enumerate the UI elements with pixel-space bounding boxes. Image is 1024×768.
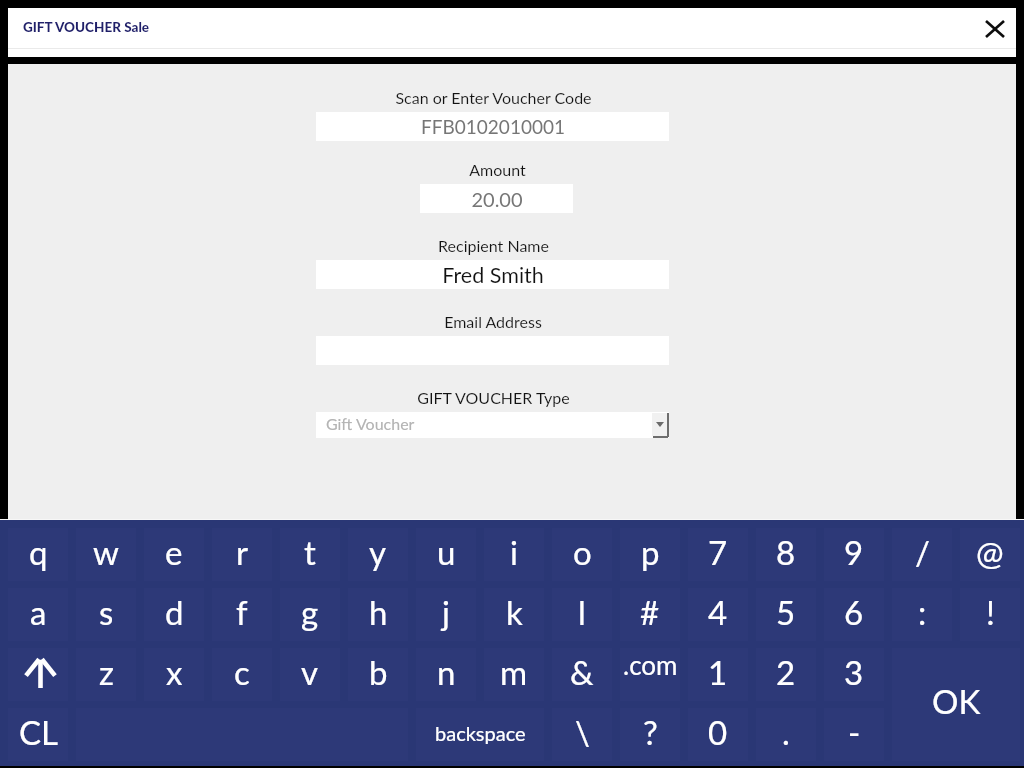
staticText: 3	[844, 652, 864, 692]
staticText: 5	[776, 592, 796, 632]
button[interactable]: 3	[824, 648, 884, 701]
button[interactable]: OK	[892, 648, 1020, 761]
button[interactable]: f	[212, 588, 272, 641]
button[interactable]: Fred Smith	[316, 260, 669, 289]
staticText: :	[918, 592, 927, 632]
staticText: 0	[708, 712, 728, 752]
button[interactable]: n	[416, 648, 476, 701]
button[interactable]: !	[960, 588, 1020, 641]
staticText: o	[573, 532, 592, 572]
staticText: d	[165, 592, 184, 632]
button[interactable]: #	[620, 588, 680, 641]
staticText: u	[437, 532, 456, 572]
staticText: i	[510, 532, 518, 572]
staticText: 4	[708, 592, 728, 632]
staticText: e	[165, 532, 183, 572]
button[interactable]: u	[416, 528, 476, 581]
staticText: a	[30, 592, 47, 632]
staticText: p	[641, 532, 660, 572]
button[interactable]: 20.00	[420, 184, 573, 213]
staticText: t	[304, 532, 316, 572]
button[interactable]: ?	[620, 708, 680, 761]
staticText: g	[301, 592, 319, 632]
staticText: f	[236, 592, 248, 632]
staticText: backspace	[435, 721, 526, 745]
staticText: 9	[844, 532, 864, 572]
staticText: #	[640, 592, 660, 632]
button[interactable]: h	[348, 588, 408, 641]
button[interactable]: q	[8, 528, 68, 581]
button[interactable]: d	[144, 588, 204, 641]
staticText: Amount	[469, 160, 526, 179]
button[interactable]: 7	[688, 528, 748, 581]
staticText: FFB0102010001	[421, 115, 565, 138]
button[interactable]: b	[348, 648, 408, 701]
button[interactable]: s	[76, 588, 136, 641]
button[interactable]: y	[348, 528, 408, 581]
button[interactable]: t	[280, 528, 340, 581]
button[interactable]: z	[76, 648, 136, 701]
button[interactable]: .	[756, 708, 816, 761]
button[interactable]: CL	[8, 708, 68, 761]
button[interactable]: Gift Voucher	[316, 412, 669, 438]
staticText: 7	[708, 532, 728, 572]
button[interactable]: :	[892, 588, 952, 641]
staticText: ?	[643, 712, 658, 752]
button[interactable]: 9	[824, 528, 884, 581]
button[interactable]: w	[76, 528, 136, 581]
staticText: GIFT VOUCHER Type	[417, 388, 570, 407]
staticText: 2	[776, 652, 796, 692]
button[interactable]: a	[8, 588, 68, 641]
button[interactable]: 0	[688, 708, 748, 761]
staticText: r	[236, 532, 249, 572]
button[interactable]: p	[620, 528, 680, 581]
staticText: OK	[932, 681, 981, 721]
staticText: .com	[623, 649, 678, 680]
button[interactable]: 1	[688, 648, 748, 701]
staticText: n	[437, 652, 456, 692]
button[interactable]: i	[484, 528, 544, 581]
staticText: /	[915, 532, 930, 572]
button[interactable]: k	[484, 588, 544, 641]
staticText: @	[976, 532, 1004, 572]
button[interactable]: 8	[756, 528, 816, 581]
staticText: -	[848, 712, 861, 752]
button[interactable]: /	[892, 528, 952, 581]
button[interactable]: \	[552, 708, 612, 761]
button[interactable]: Shift	[8, 648, 68, 701]
staticText: l	[578, 592, 586, 632]
staticText: w	[93, 532, 119, 572]
button[interactable]: x	[144, 648, 204, 701]
staticText: y	[369, 532, 387, 572]
button[interactable]: backspace	[416, 708, 544, 761]
button[interactable]: @	[960, 528, 1020, 581]
staticText: v	[301, 652, 319, 692]
button[interactable]: l	[552, 588, 612, 641]
button[interactable]: 2	[756, 648, 816, 701]
staticText: h	[369, 592, 388, 632]
button[interactable]: 5	[756, 588, 816, 641]
button[interactable]: Close	[966, 9, 1024, 49]
button[interactable]: j	[416, 588, 476, 641]
button[interactable]: o	[552, 528, 612, 581]
button[interactable]: -	[824, 708, 884, 761]
staticText: !	[986, 592, 995, 632]
button[interactable]: e	[144, 528, 204, 581]
staticText: Gift Voucher	[326, 414, 415, 433]
button[interactable]: 4	[688, 588, 748, 641]
button[interactable]: m	[484, 648, 544, 701]
button[interactable]: 6	[824, 588, 884, 641]
button[interactable]: g	[280, 588, 340, 641]
button[interactable]: r	[212, 528, 272, 581]
button[interactable]: &	[552, 648, 612, 701]
button[interactable]: .com	[620, 648, 680, 701]
staticText: b	[369, 652, 388, 692]
staticText: s	[99, 592, 114, 632]
button[interactable]: v	[280, 648, 340, 701]
staticText: 8	[776, 532, 796, 572]
button[interactable]: FFB0102010001	[316, 112, 669, 141]
staticText: c	[234, 652, 250, 692]
button[interactable]: c	[212, 648, 272, 701]
